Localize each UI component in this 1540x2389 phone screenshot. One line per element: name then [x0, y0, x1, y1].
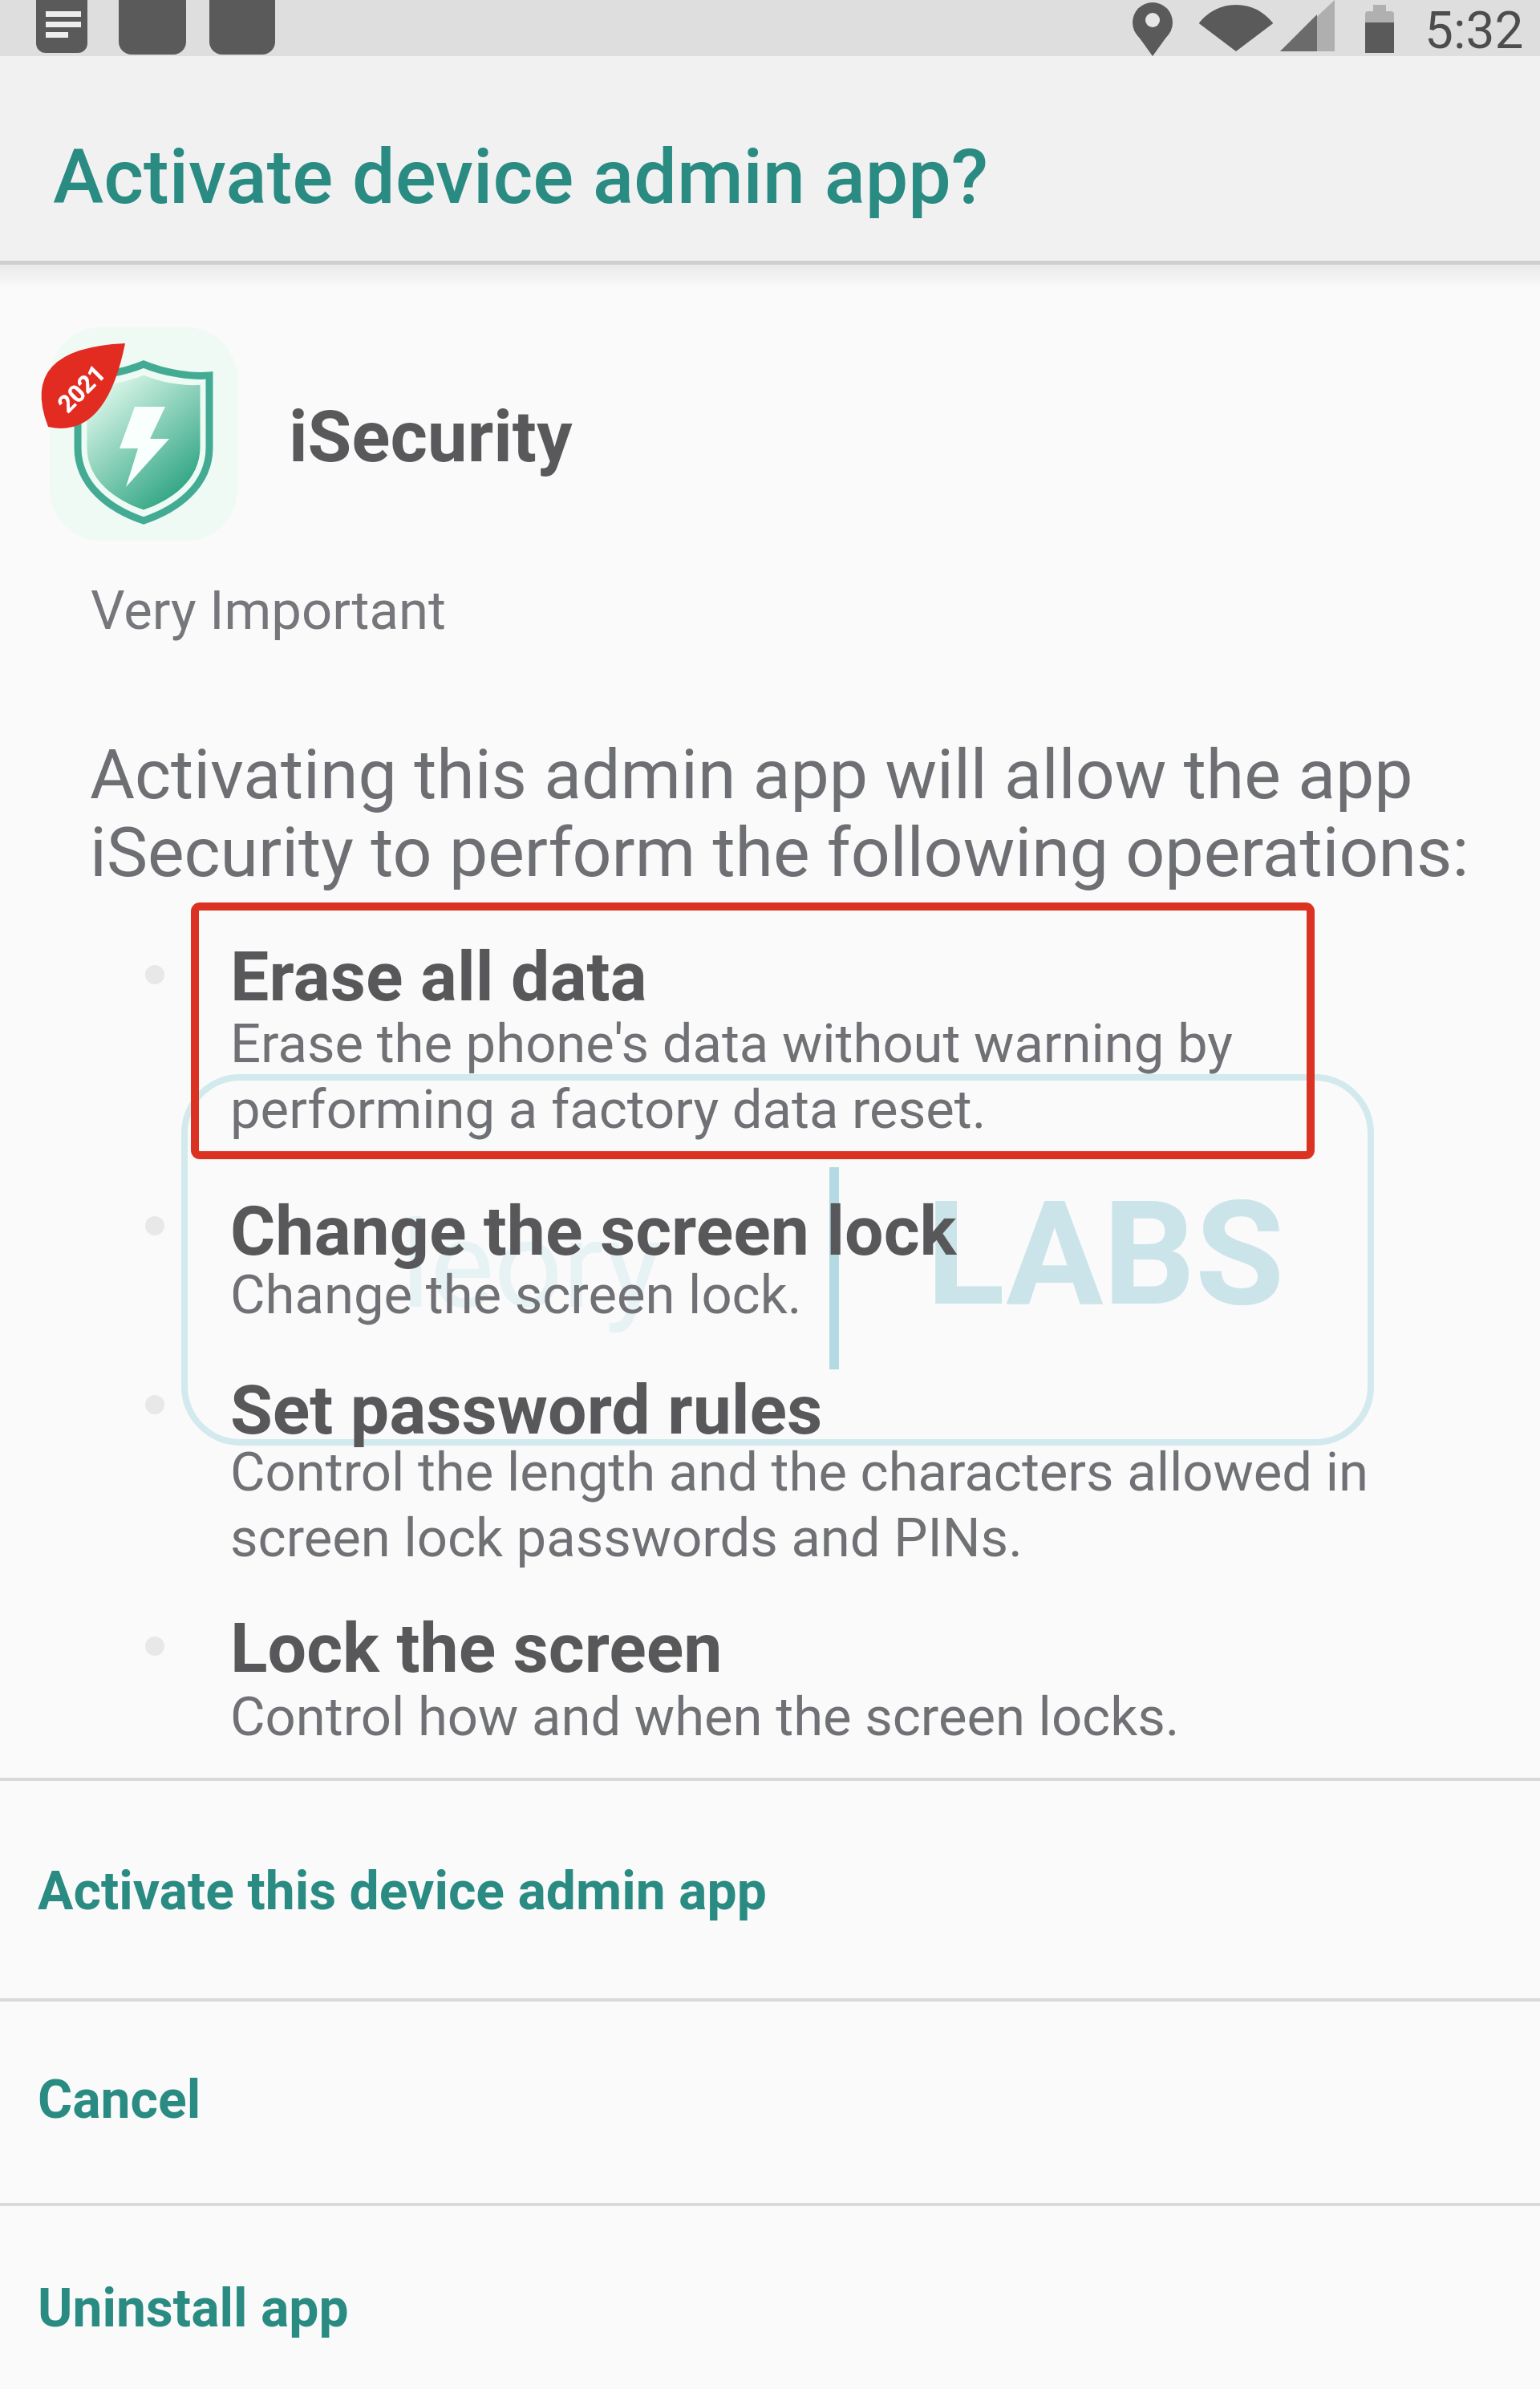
staticText: Erase all data — [230, 936, 647, 1017]
staticText: iSecurity — [289, 395, 573, 478]
staticText: Erase the phone's data without warning b… — [230, 1012, 1234, 1141]
staticText: Control the length and the characters al… — [230, 1441, 1369, 1569]
staticText: Very Important — [91, 579, 446, 643]
staticText: Change the screen lock. — [230, 1263, 802, 1327]
staticText: leory — [401, 1195, 662, 1336]
staticText: Lock the screen — [230, 1608, 723, 1689]
staticText: Change the screen lock — [230, 1190, 957, 1272]
staticText: Activate device admin app? — [53, 132, 989, 221]
staticText: Cancel — [38, 2069, 201, 2131]
button[interactable]: Cancel — [0, 2002, 1540, 2203]
staticText: LABS — [926, 1170, 1284, 1339]
staticText: Activate this device admin app — [38, 1860, 767, 1922]
button[interactable]: Uninstall app — [0, 2206, 1540, 2389]
button[interactable]: Activate this device admin app — [0, 1781, 1540, 1998]
staticText: 2021 — [52, 359, 111, 418]
staticText: Uninstall app — [38, 2277, 349, 2339]
staticText: 5:32 — [1424, 1, 1524, 61]
staticText: Activating this admin app will allow the… — [90, 734, 1469, 893]
staticText: Control how and when the screen locks. — [230, 1685, 1180, 1749]
staticText: Set password rules — [230, 1369, 823, 1450]
